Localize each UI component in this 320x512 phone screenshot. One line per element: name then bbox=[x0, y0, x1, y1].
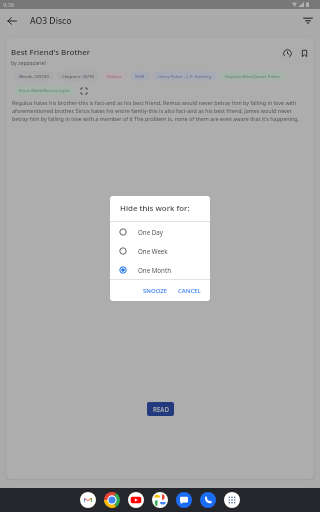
button[interactable]: Chapters: 30/30 bbox=[57, 71, 99, 81]
button[interactable]: YouTube bbox=[128, 492, 144, 508]
staticText: 9:36 bbox=[3, 1, 15, 9]
staticText: Chapters: 30/30 bbox=[62, 73, 94, 79]
staticText: Regulus Black/James Potter bbox=[225, 73, 281, 79]
staticText: Sirius Black/Remus Lupin bbox=[19, 87, 70, 93]
button[interactable]: Snooze bbox=[281, 47, 294, 60]
button[interactable]: Expand tags bbox=[79, 86, 88, 95]
button[interactable]: Messages bbox=[176, 492, 192, 508]
button[interactable]: Chrome bbox=[104, 492, 120, 508]
button[interactable]: Phone bbox=[200, 492, 216, 508]
button[interactable]: One Day bbox=[110, 222, 210, 241]
button[interactable]: Filter bbox=[296, 9, 319, 32]
staticText: AO3 Disco bbox=[30, 15, 72, 27]
staticText: Best Friend's Brother bbox=[11, 47, 91, 58]
button[interactable]: Photos bbox=[152, 492, 168, 508]
staticText: Harry Potter - J. K. Rowling bbox=[158, 73, 212, 79]
button[interactable]: Harry Potter - J. K. Rowling bbox=[153, 71, 217, 81]
button[interactable]: Regulus Black/James Potter bbox=[220, 71, 286, 81]
button[interactable]: READ bbox=[147, 402, 174, 416]
staticText: One Month bbox=[138, 266, 171, 274]
staticText: SNOOZE bbox=[143, 287, 168, 295]
button[interactable]: Mature bbox=[102, 71, 127, 81]
button[interactable]: M/M bbox=[130, 71, 150, 81]
staticText: One Day bbox=[138, 228, 163, 236]
staticText: One Week bbox=[138, 247, 168, 255]
button[interactable]: Bookmark bbox=[298, 47, 311, 60]
staticText: M/M bbox=[135, 73, 145, 79]
button[interactable]: CANCEL bbox=[174, 284, 205, 298]
button[interactable]: One Week bbox=[110, 241, 210, 260]
button[interactable]: Words: 329740 bbox=[14, 71, 54, 81]
staticText: READ bbox=[153, 405, 169, 413]
staticText: Mature bbox=[107, 73, 122, 79]
button[interactable]: All apps bbox=[224, 492, 240, 508]
staticText: Words: 329740 bbox=[19, 73, 49, 79]
button[interactable]: SNOOZE bbox=[139, 284, 172, 298]
staticText: Hide this work for: bbox=[120, 203, 190, 214]
staticText: CANCEL bbox=[178, 287, 201, 295]
button[interactable]: One Month bbox=[110, 260, 210, 279]
button[interactable]: Sirius Black/Remus Lupin bbox=[14, 85, 75, 95]
button[interactable]: Back bbox=[0, 9, 23, 32]
button[interactable]: Gmail bbox=[80, 492, 96, 508]
staticText: by zeppazariel bbox=[11, 59, 46, 66]
staticText: Regulus hates his brother-this is fact-a… bbox=[12, 99, 306, 123]
